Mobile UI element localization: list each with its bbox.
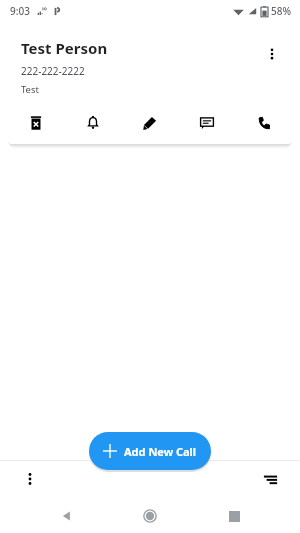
- button[interactable]: More options: [16, 465, 44, 493]
- button[interactable]: Call: [242, 105, 286, 141]
- button[interactable]: Edit: [128, 105, 172, 141]
- button[interactable]: Back: [50, 499, 84, 533]
- button[interactable]: Reminder: [71, 105, 115, 141]
- button[interactable]: Recents: [217, 499, 251, 533]
- staticText: Test: [21, 83, 39, 96]
- button[interactable]: Delete: [14, 105, 58, 141]
- button[interactable]: More options: [256, 38, 288, 70]
- staticText: 58%: [271, 4, 291, 18]
- button[interactable]: Home: [133, 499, 167, 533]
- button[interactable]: Test Person: [8, 28, 292, 144]
- staticText: 9:03: [10, 4, 30, 18]
- button[interactable]: Sort: [256, 465, 284, 493]
- staticText: Test Person: [21, 38, 108, 58]
- staticText: Add New Call: [124, 444, 197, 459]
- staticText: 222-222-2222: [21, 64, 85, 78]
- button[interactable]: Message: [185, 105, 229, 141]
- button[interactable]: Add New Call: [89, 432, 211, 470]
